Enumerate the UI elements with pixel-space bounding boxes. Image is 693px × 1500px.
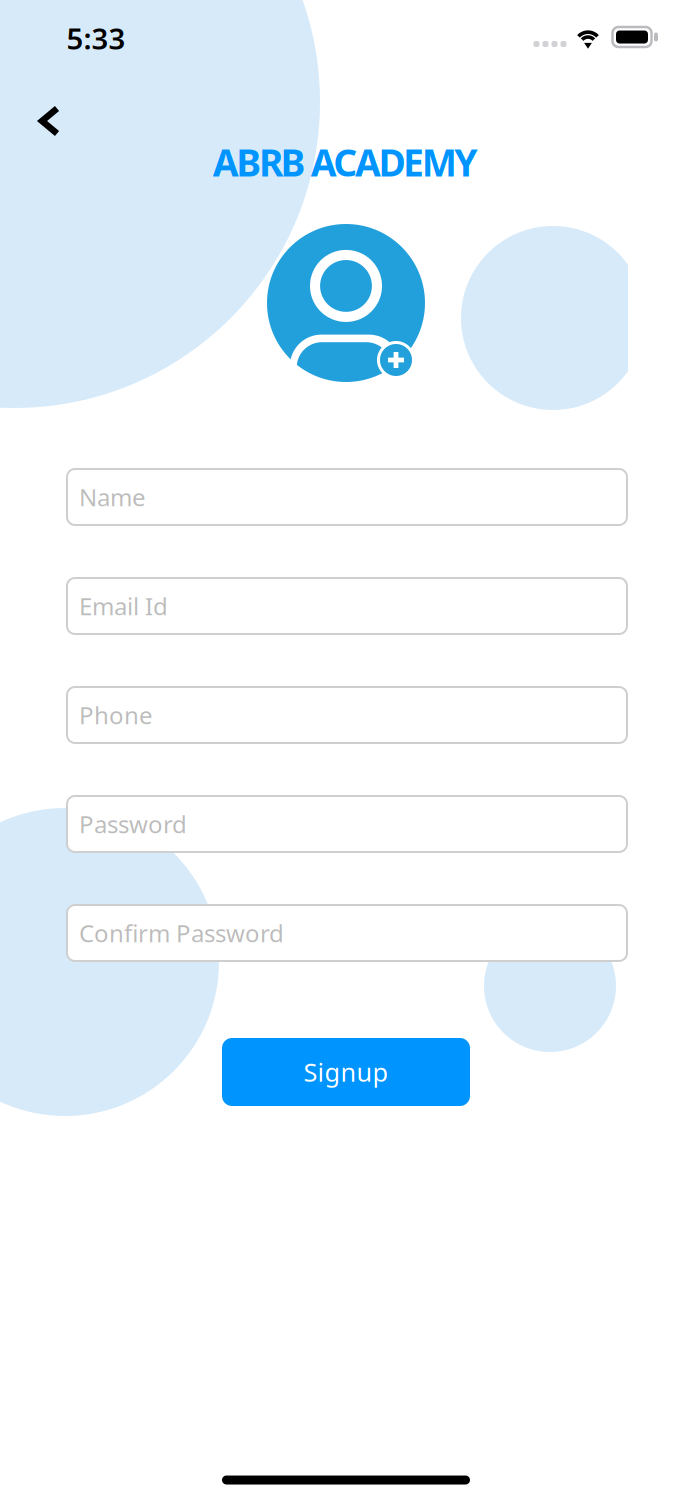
staticText: Password — [79, 808, 187, 840]
staticText: ABRB ACADEMY — [213, 137, 477, 187]
staticText: Phone — [79, 699, 153, 731]
staticText: Email Id — [79, 590, 168, 622]
staticText: 5:33 — [66, 18, 125, 57]
staticText: Name — [79, 481, 146, 513]
button[interactable]: Back — [22, 88, 77, 153]
staticText: Signup — [303, 1055, 388, 1089]
button[interactable]: Signup — [222, 1038, 470, 1106]
staticText: Confirm Password — [79, 917, 284, 949]
